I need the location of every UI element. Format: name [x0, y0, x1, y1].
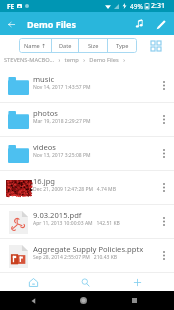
- button[interactable]: More options: [157, 137, 171, 170]
- button[interactable]: Search: [59, 273, 111, 291]
- button[interactable]: Grid view: [145, 35, 166, 56]
- staticText: Name ↑: [24, 42, 46, 50]
- button[interactable]: Name ↑: [19, 38, 51, 53]
- button[interactable]: More options: [157, 171, 171, 204]
- button[interactable]: More options: [157, 103, 171, 136]
- button[interactable]: Date: [52, 38, 78, 53]
- staticText: Apr 11, 2013 10:00:03 AM 142.51 KB: [33, 220, 120, 227]
- button[interactable]: Edit: [150, 13, 172, 35]
- staticText: Sep 28, 2014 2:55:07 PM 210.43 KB: [33, 254, 118, 261]
- button[interactable]: Home: [8, 273, 59, 291]
- button[interactable]: 16.jpg: [0, 171, 174, 204]
- button[interactable]: Home: [58, 291, 109, 310]
- button[interactable]: Size: [79, 38, 107, 53]
- button[interactable]: music: [0, 69, 174, 102]
- staticText: videos: [33, 142, 57, 152]
- staticText: FE: [7, 2, 15, 11]
- button[interactable]: videos: [0, 137, 174, 170]
- staticText: Type: [116, 42, 129, 50]
- staticText: Size: [88, 42, 99, 50]
- staticText: Dec 21, 2009 12:47:28 PM 4.74 MB: [33, 186, 116, 193]
- staticText: Nov 13, 2017 3:25:08 PM: [33, 152, 91, 159]
- button[interactable]: More options: [157, 205, 171, 238]
- button[interactable]: 9.03.2015.pdf: [0, 205, 174, 238]
- staticText: Demo Files: [27, 18, 76, 30]
- staticText: 9.03.2015.pdf: [33, 210, 82, 220]
- button[interactable]: Back: [0, 13, 22, 35]
- button[interactable]: Type: [108, 38, 137, 53]
- staticText: STEVENS-MACBO… › temp › Demo Files ›: [4, 56, 125, 64]
- button[interactable]: photos: [0, 103, 174, 136]
- staticText: Mar 19, 2018 2:29:27 PM: [33, 118, 91, 125]
- staticText: Aggregate Supply Policies.pptx: [33, 244, 144, 254]
- staticText: photos: [33, 108, 58, 118]
- button[interactable]: More options: [157, 239, 171, 272]
- button[interactable]: Back: [8, 291, 58, 310]
- button[interactable]: Recents: [109, 291, 160, 310]
- button[interactable]: More options: [157, 69, 171, 102]
- button[interactable]: Add: [111, 273, 163, 291]
- button[interactable]: Music: [128, 13, 150, 35]
- staticText: Date: [59, 42, 72, 50]
- button[interactable]: Aggregate Supply Policies.pptx: [0, 239, 174, 272]
- staticText: music: [33, 74, 55, 84]
- staticText: 2:31: [151, 1, 165, 11]
- staticText: 49%: [130, 2, 143, 11]
- staticText: 16.jpg: [33, 176, 56, 186]
- staticText: Nov 14, 2017 1:43:57 PM: [33, 84, 91, 91]
